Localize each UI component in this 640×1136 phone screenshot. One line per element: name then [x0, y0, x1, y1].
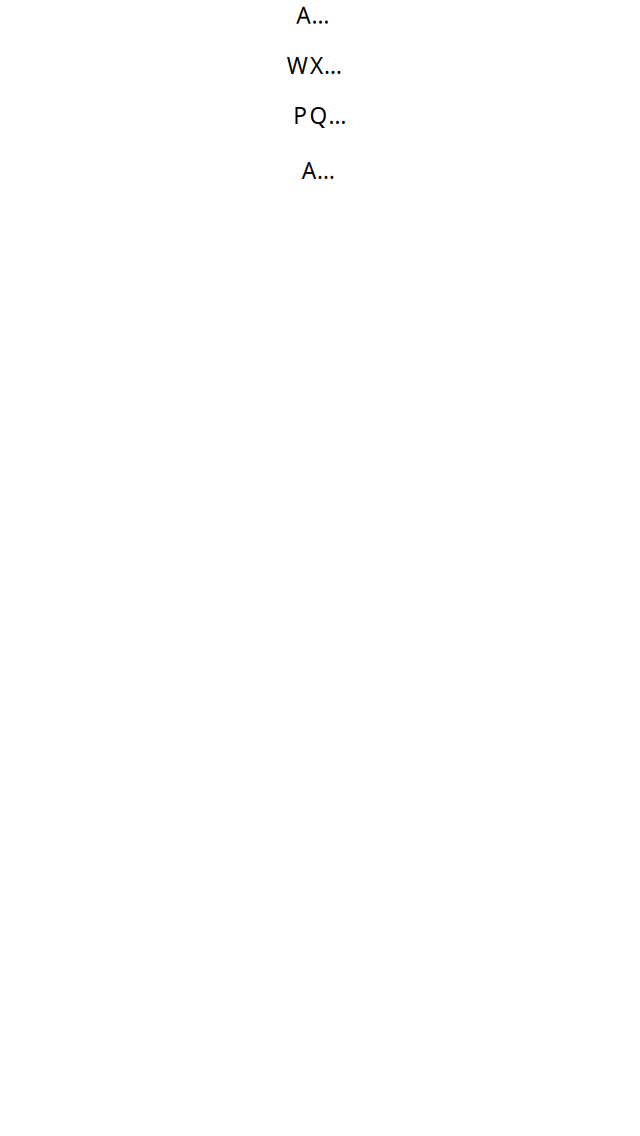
staticText: PQRS	[293, 100, 358, 130]
staticText: ABC	[296, 0, 344, 30]
staticText: WXYZ	[287, 50, 353, 80]
staticText: ABC	[302, 155, 349, 185]
